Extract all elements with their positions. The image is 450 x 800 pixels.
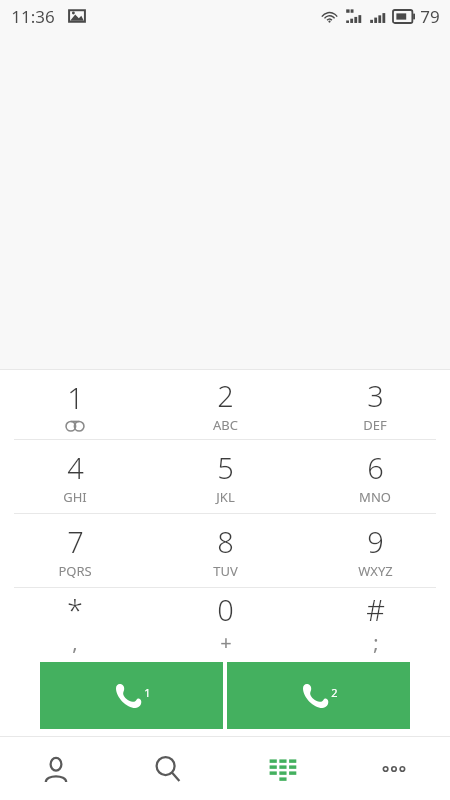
- button[interactable]: More options: [337, 737, 450, 800]
- staticText: JKL: [216, 488, 235, 506]
- button[interactable]: 5: [150, 440, 300, 513]
- button[interactable]: Dialpad: [224, 737, 337, 800]
- button[interactable]: 4: [0, 440, 150, 513]
- staticText: *: [67, 590, 83, 629]
- button[interactable]: 2: [150, 370, 300, 439]
- staticText: WXYZ: [358, 562, 393, 580]
- staticText: 9: [367, 522, 384, 561]
- button[interactable]: *: [0, 588, 150, 658]
- staticText: 2: [331, 685, 338, 700]
- staticText: 1: [144, 685, 151, 700]
- button[interactable]: Contacts: [0, 737, 112, 800]
- staticText: #: [366, 590, 385, 629]
- staticText: 3: [367, 376, 384, 415]
- staticText: +: [220, 629, 232, 656]
- staticText: 11:36: [11, 5, 55, 28]
- button[interactable]: Call with SIM 2: [227, 662, 410, 729]
- staticText: ABC: [213, 416, 238, 434]
- staticText: ,: [72, 629, 78, 656]
- staticText: 7: [67, 522, 84, 561]
- staticText: 8: [217, 522, 234, 561]
- staticText: MNO: [359, 488, 391, 506]
- button[interactable]: 9: [300, 514, 450, 587]
- staticText: 2: [217, 376, 234, 415]
- button[interactable]: 7: [0, 514, 150, 587]
- staticText: TUV: [213, 562, 238, 580]
- staticText: 0: [217, 590, 234, 629]
- button[interactable]: 3: [300, 370, 450, 439]
- button[interactable]: 1: [0, 370, 150, 439]
- staticText: GHI: [63, 488, 87, 506]
- staticText: ;: [373, 629, 379, 656]
- staticText: 5: [217, 448, 234, 487]
- staticText: 79: [420, 5, 440, 28]
- button[interactable]: #: [300, 588, 450, 658]
- button[interactable]: Search: [112, 737, 224, 800]
- staticText: 4: [67, 448, 84, 487]
- button[interactable]: 0: [150, 588, 300, 658]
- staticText: 6: [367, 448, 384, 487]
- button[interactable]: Call with SIM 1: [40, 662, 223, 729]
- staticText: DEF: [363, 416, 387, 434]
- button[interactable]: 6: [300, 440, 450, 513]
- staticText: PQRS: [58, 562, 92, 580]
- button[interactable]: 8: [150, 514, 300, 587]
- staticText: 1: [67, 378, 84, 417]
